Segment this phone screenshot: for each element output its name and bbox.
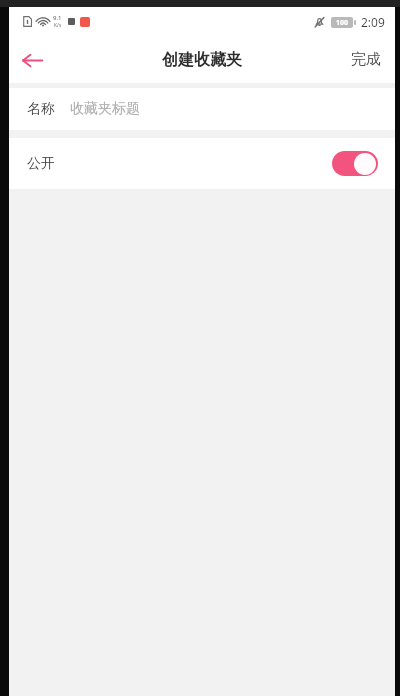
- staticText: 名称: [27, 100, 55, 118]
- button[interactable]: 完成: [337, 36, 395, 83]
- button[interactable]: 公开: [9, 138, 395, 189]
- button[interactable]: Back: [9, 37, 55, 83]
- staticText: 收藏夹标题: [70, 100, 140, 118]
- staticText: 100: [336, 18, 349, 28]
- staticText: 创建收藏夹: [162, 50, 242, 70]
- staticText: 公开: [27, 155, 55, 173]
- button[interactable]: Public toggle, on: [332, 151, 378, 176]
- staticText: 9.1: [53, 14, 62, 22]
- staticText: K/s: [54, 22, 62, 29]
- staticText: 完成: [351, 50, 381, 69]
- staticText: 2:09: [361, 14, 385, 30]
- button[interactable]: 名称: [9, 88, 395, 130]
